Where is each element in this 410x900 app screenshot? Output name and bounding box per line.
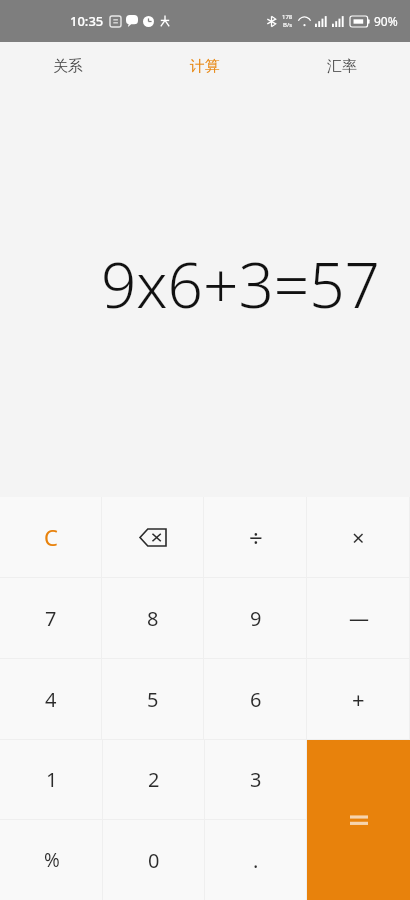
staticText: 0 xyxy=(148,847,160,874)
button[interactable]: Equals xyxy=(307,740,410,900)
staticText: C xyxy=(44,522,58,552)
staticText: 9 xyxy=(250,605,262,632)
staticText: 90% xyxy=(374,13,398,29)
staticText: 关系 xyxy=(53,57,83,76)
button[interactable]: Backspace xyxy=(102,497,204,577)
button[interactable]: 3 xyxy=(205,740,307,819)
button[interactable]: 0 xyxy=(103,820,205,900)
staticText: % xyxy=(44,847,60,873)
button[interactable]: 2 xyxy=(103,740,205,819)
staticText: 8 xyxy=(147,605,159,632)
button[interactable]: 7 xyxy=(0,578,102,658)
staticText: 5 xyxy=(147,686,159,713)
staticText: B/s xyxy=(283,21,293,29)
button[interactable]: 5 xyxy=(102,659,204,739)
staticText: + xyxy=(352,684,365,714)
staticText: 7 xyxy=(45,605,57,632)
button[interactable]: 关系 xyxy=(0,42,136,90)
button[interactable]: 1 xyxy=(0,740,103,819)
staticText: 2 xyxy=(148,766,160,793)
button[interactable]: ÷ xyxy=(204,497,307,577)
button[interactable]: C xyxy=(0,497,102,577)
button[interactable]: 6 xyxy=(204,659,307,739)
button[interactable]: 汇率 xyxy=(273,42,410,90)
staticText: 9x6+3=57 xyxy=(100,242,380,326)
staticText: 计算 xyxy=(190,57,220,76)
button[interactable]: + xyxy=(307,659,410,739)
button[interactable]: — xyxy=(307,578,410,658)
staticText: . xyxy=(253,847,259,874)
button[interactable]: . xyxy=(205,820,307,900)
staticText: 汇率 xyxy=(327,57,357,76)
button[interactable]: % xyxy=(0,820,103,900)
staticText: ÷ xyxy=(249,521,263,554)
staticText: 178 xyxy=(282,13,293,21)
staticText: 10:35 xyxy=(70,12,104,30)
staticText: 1 xyxy=(46,766,58,793)
button[interactable]: 4 xyxy=(0,659,102,739)
button[interactable]: 9 xyxy=(204,578,307,658)
staticText: 4 xyxy=(45,686,57,713)
staticText: 6 xyxy=(250,686,262,713)
staticText: 3 xyxy=(250,766,262,793)
button[interactable]: 计算 xyxy=(136,42,273,90)
staticText: — xyxy=(349,605,369,632)
staticText: × xyxy=(352,522,365,552)
button[interactable]: 8 xyxy=(102,578,204,658)
button[interactable]: × xyxy=(307,497,410,577)
